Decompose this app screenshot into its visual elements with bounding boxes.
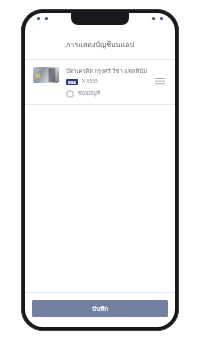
staticText: X-5555 — [82, 78, 98, 85]
staticText: บันทึก — [92, 304, 108, 314]
staticText: บัตรเครดิต กรุงศรี วีซ่า แพลทินัม — [66, 66, 147, 75]
button[interactable]: บันทึก — [32, 300, 168, 317]
staticText: ซ่อนบัญชี — [78, 89, 101, 98]
button[interactable]: ซ่อนบัญชี — [66, 89, 101, 98]
staticText: VISA — [68, 80, 76, 85]
button[interactable]: บัตรเครดิต กรุงศรี วีซ่า แพลทินัม — [25, 60, 175, 104]
staticText: การแสดงบัญชีบนแอป — [35, 39, 165, 50]
button[interactable]: Reorder — [153, 74, 167, 88]
